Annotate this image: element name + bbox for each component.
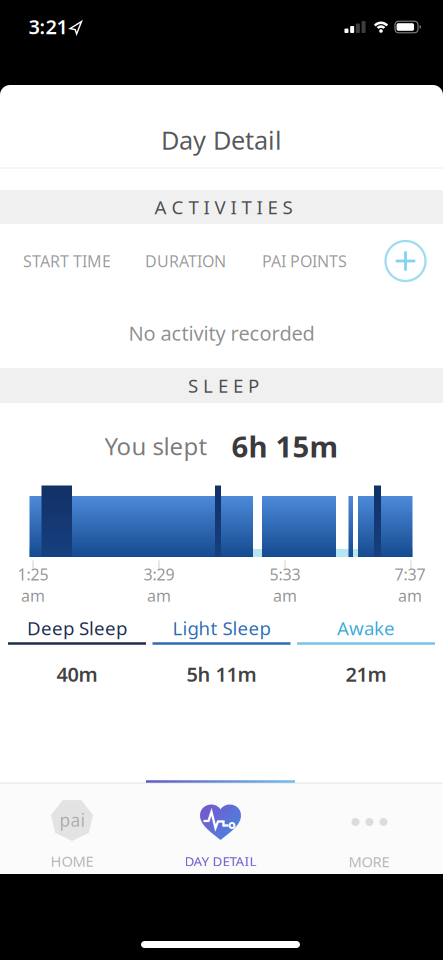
staticText: 5:33 <box>269 564 300 585</box>
staticText: pai <box>59 808 84 831</box>
staticText: 6h 15m <box>231 426 338 465</box>
button[interactable]: Deep Sleep <box>8 615 146 649</box>
staticText: 7:37 <box>394 564 425 585</box>
staticText: HOME <box>50 851 93 871</box>
staticText: Deep Sleep <box>27 616 127 640</box>
staticText: 21m <box>345 661 386 687</box>
staticText: Awake <box>337 616 395 640</box>
staticText: am <box>398 585 422 606</box>
button[interactable]: MORE <box>314 784 424 870</box>
button[interactable]: pai <box>17 784 127 870</box>
staticText: S L E E P <box>188 373 259 398</box>
button[interactable]: DAY DETAIL <box>155 784 285 870</box>
button[interactable]: Light Sleep <box>152 615 290 649</box>
staticText: A C T I V I T I E S <box>154 195 292 219</box>
staticText: MORE <box>348 852 389 871</box>
staticText: 40m <box>56 661 97 687</box>
staticText: No activity recorded <box>128 320 314 346</box>
staticText: You slept <box>104 430 207 462</box>
staticText: 1:25 <box>17 564 48 585</box>
staticText: 3:29 <box>143 564 174 585</box>
staticText: am <box>147 585 171 606</box>
staticText: DAY DETAIL <box>184 852 256 870</box>
button[interactable] <box>384 239 427 282</box>
button[interactable]: Awake <box>297 615 435 649</box>
staticText: am <box>21 585 45 606</box>
staticText: 3:21 <box>28 13 67 40</box>
staticText: START TIME <box>23 250 111 272</box>
staticText: PAI POINTS <box>262 250 347 272</box>
staticText: am <box>273 585 297 606</box>
staticText: Light Sleep <box>172 616 270 640</box>
staticText: DURATION <box>145 250 226 272</box>
staticText: 5h 11m <box>186 661 256 687</box>
staticText: Day Detail <box>161 123 282 157</box>
